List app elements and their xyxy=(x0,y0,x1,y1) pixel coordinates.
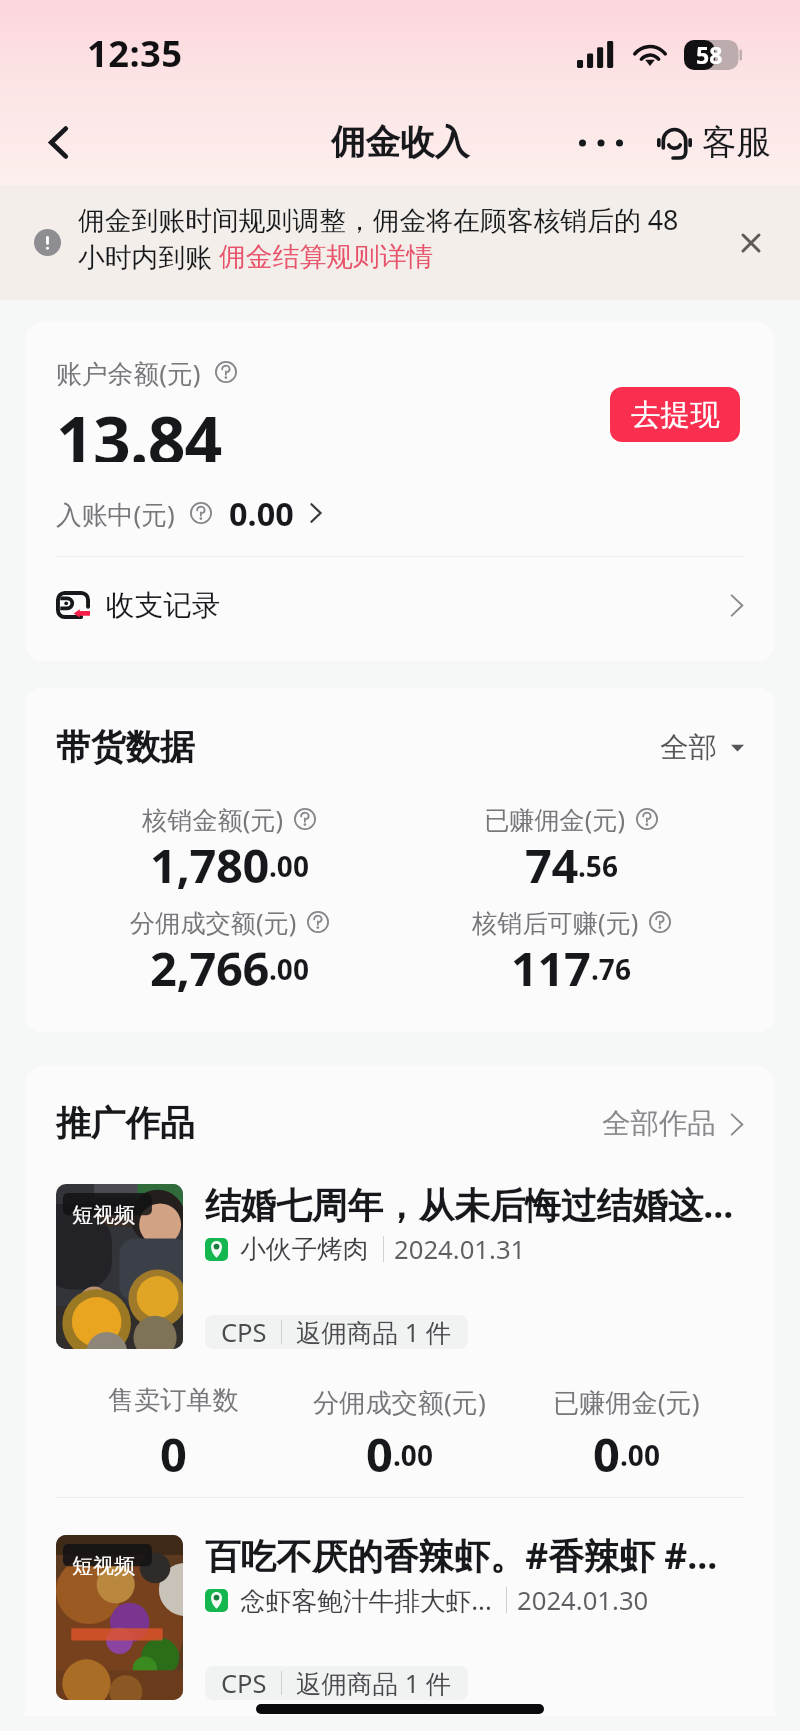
staticText: 入账中(元) xyxy=(56,496,175,531)
button[interactable]: 全部作品 xyxy=(602,1106,744,1142)
staticText: 百吃不厌的香辣虾。#香辣虾 #... xyxy=(205,1531,718,1575)
staticText: 0 xyxy=(160,1422,187,1478)
staticText: 分佣成交额(元) xyxy=(313,1384,486,1420)
staticText: 小伙子烤肉 xyxy=(240,1233,369,1265)
staticText: 推广作品 xyxy=(56,1102,195,1146)
staticText: 收支记录 xyxy=(106,587,221,623)
staticText: 1,780 xyxy=(150,833,269,889)
staticText: 已赚佣金(元) xyxy=(553,1384,700,1420)
staticText: 佣金收入 xyxy=(331,121,470,165)
button[interactable]: More options xyxy=(567,103,635,183)
staticText: 12:35 xyxy=(87,28,183,78)
staticText: 小时内到账 xyxy=(78,238,219,275)
staticText: 核销后可赚(元) xyxy=(472,905,639,939)
staticText: CPS xyxy=(221,1315,267,1349)
staticText: 账户余额(元) xyxy=(56,355,201,390)
staticText: 去提现 xyxy=(631,396,720,433)
button[interactable]: Close banner xyxy=(715,207,787,279)
staticText: 全部作品 xyxy=(602,1106,716,1142)
staticText: 0 xyxy=(593,1422,620,1478)
staticText: 佣金到账时间规则调整，佣金将在顾客核销后的 48 xyxy=(78,201,679,238)
staticText: 念虾客鲍汁牛排大虾... xyxy=(240,1583,492,1618)
staticText: 短视频 xyxy=(72,1553,135,1579)
staticText: 74 xyxy=(525,833,578,889)
button[interactable]: Back xyxy=(14,100,102,185)
staticText: 2024.01.30 xyxy=(517,1583,649,1618)
staticText: 0.00 xyxy=(229,491,294,535)
button[interactable]: 全部 xyxy=(660,730,744,766)
staticText: 返佣商品 1 件 xyxy=(296,1315,452,1349)
button[interactable]: 收支记录 xyxy=(25,577,775,633)
staticText: CPS xyxy=(221,1666,267,1700)
staticText: .00 xyxy=(269,950,309,988)
staticText: 客服 xyxy=(702,121,772,165)
button[interactable]: 短视频 xyxy=(25,1535,775,1700)
staticText: .56 xyxy=(578,847,618,885)
staticText: .00 xyxy=(269,847,309,885)
staticText: 全部 xyxy=(660,730,717,766)
button[interactable]: 佣金结算规则详情 xyxy=(219,240,434,274)
staticText: 已赚佣金(元) xyxy=(484,802,626,836)
staticText: 核销金额(元) xyxy=(142,802,284,836)
staticText: 0 xyxy=(366,1422,393,1478)
staticText: 2024.01.31 xyxy=(394,1232,526,1267)
button[interactable]: 客服 xyxy=(657,121,772,165)
staticText: .00 xyxy=(620,1436,660,1474)
staticText: 2,766 xyxy=(150,936,269,992)
staticText: 结婚七周年，从未后悔过结婚这... xyxy=(205,1180,734,1224)
staticText: 售卖订单数 xyxy=(108,1384,239,1417)
staticText: 短视频 xyxy=(72,1202,135,1228)
staticText: 分佣成交额(元) xyxy=(130,905,297,939)
staticText: 117 xyxy=(511,936,591,992)
staticText: 58 xyxy=(696,39,723,70)
button[interactable]: 去提现 xyxy=(610,387,740,442)
staticText: .76 xyxy=(591,950,631,988)
staticText: 13.84 xyxy=(56,394,222,462)
button[interactable]: 入账中(元) xyxy=(56,491,322,535)
staticText: 带货数据 xyxy=(56,726,195,770)
button[interactable]: 短视频 xyxy=(25,1184,775,1349)
staticText: .00 xyxy=(393,1436,433,1474)
staticText: 返佣商品 1 件 xyxy=(296,1666,452,1700)
